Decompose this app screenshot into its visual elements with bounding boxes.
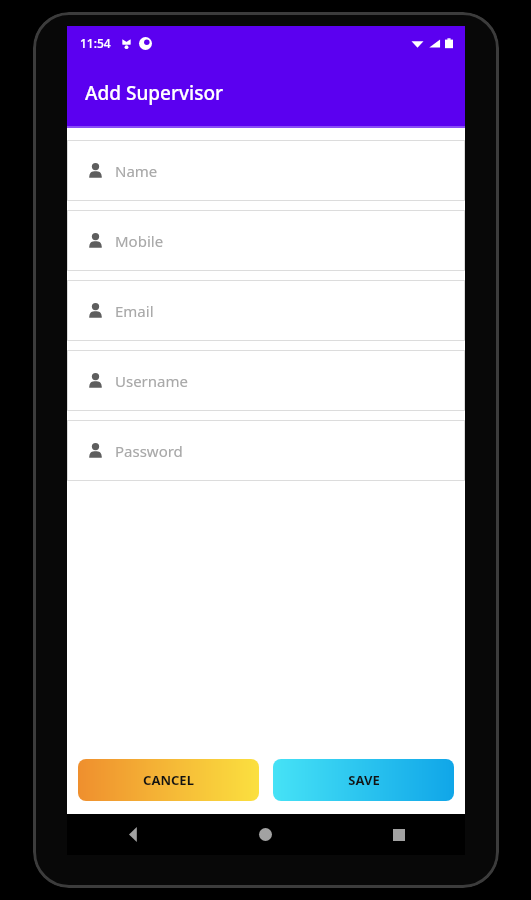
- button[interactable]: Email: [67, 280, 465, 341]
- staticText: Add Supervisor: [85, 80, 224, 106]
- button[interactable]: CANCEL: [78, 759, 259, 801]
- button[interactable]: Username: [67, 350, 465, 411]
- button[interactable]: Password: [67, 420, 465, 481]
- staticText: CANCEL: [143, 771, 194, 789]
- staticText: 11:54: [80, 35, 111, 51]
- staticText: SAVE: [348, 771, 380, 789]
- button[interactable]: Back: [67, 814, 199, 855]
- staticText: Email: [115, 301, 154, 321]
- button[interactable]: Name: [67, 140, 465, 201]
- staticText: Username: [115, 371, 188, 391]
- staticText: Password: [115, 441, 183, 461]
- button[interactable]: Home: [199, 814, 332, 855]
- button[interactable]: SAVE: [273, 759, 454, 801]
- button[interactable]: Mobile: [67, 210, 465, 271]
- button[interactable]: Recent apps: [332, 814, 465, 855]
- staticText: Name: [115, 161, 158, 181]
- staticText: Mobile: [115, 231, 164, 251]
